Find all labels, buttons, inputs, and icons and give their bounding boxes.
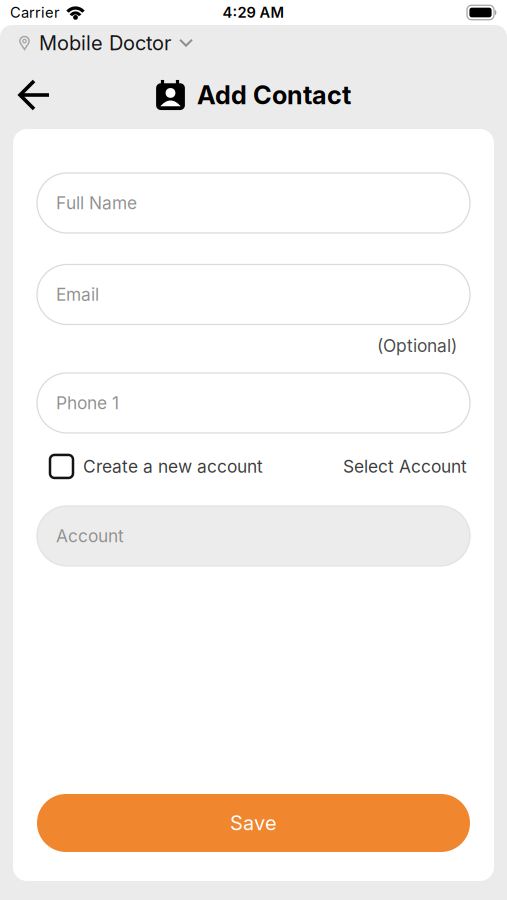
staticText: Phone 1 (56, 393, 119, 413)
staticText: Mobile Doctor (39, 31, 171, 55)
staticText: Account (56, 526, 124, 546)
staticText: Full Name (56, 193, 137, 213)
staticText: Add Contact (197, 80, 351, 110)
staticText: Carrier (10, 4, 60, 21)
button[interactable]: Phone 1 (37, 373, 470, 433)
button[interactable]: Create a new account (50, 455, 263, 478)
staticText: Create a new account (83, 456, 263, 477)
staticText: Save (230, 811, 277, 835)
button[interactable]: Mobile Doctor (0, 25, 507, 61)
button[interactable]: Email (37, 264, 470, 324)
staticText: (Optional) (377, 335, 457, 356)
staticText: Select Account (343, 456, 467, 477)
button[interactable]: Select Account (343, 456, 467, 477)
button[interactable]: Save (37, 794, 470, 852)
button[interactable]: Full Name (37, 173, 470, 233)
staticText: 4:29 AM (222, 4, 284, 21)
staticText: Email (56, 284, 99, 305)
button[interactable]: Back (0, 79, 50, 110)
